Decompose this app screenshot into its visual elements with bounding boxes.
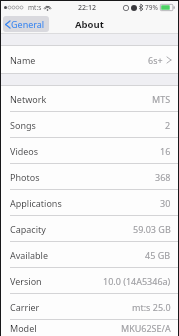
staticText: 2 <box>165 119 171 131</box>
staticText: mt:s <box>28 3 42 12</box>
button[interactable]: Capacity <box>1 216 178 241</box>
staticText: Carrier <box>10 301 40 313</box>
staticText: Available <box>10 249 48 261</box>
button[interactable]: Version <box>1 268 178 293</box>
staticText: Photos <box>10 171 40 183</box>
button[interactable]: Applications <box>1 190 178 215</box>
staticText: Name <box>10 54 36 66</box>
staticText: Videos <box>10 145 39 157</box>
staticText: General <box>11 18 45 30</box>
button[interactable]: Videos <box>1 138 178 163</box>
staticText: About <box>75 18 104 31</box>
staticText: MKU62SE/A <box>121 322 171 334</box>
button[interactable]: Songs <box>1 112 178 137</box>
staticText: mt:s 25.0 <box>132 301 171 313</box>
staticText: Network <box>10 93 47 105</box>
button[interactable]: Network <box>1 86 178 111</box>
staticText: 368 <box>155 171 171 183</box>
staticText: 30 <box>160 197 171 209</box>
staticText: 22:12 <box>78 3 96 13</box>
staticText: 59.03 GB <box>133 223 171 235</box>
button[interactable]: General <box>3 16 49 32</box>
button[interactable]: Carrier <box>1 294 178 319</box>
staticText: 6s+ <box>148 54 163 66</box>
staticText: Songs <box>10 119 36 131</box>
staticText: 79% <box>145 3 158 12</box>
staticText: Capacity <box>10 223 46 235</box>
staticText: 16 <box>160 145 171 157</box>
button[interactable]: Photos <box>1 164 178 189</box>
staticText: Model <box>10 322 37 334</box>
staticText: 10.0 (14A5346a) <box>103 275 171 287</box>
button[interactable]: Name <box>1 46 178 73</box>
staticText: 45 GB <box>145 249 171 261</box>
staticText: MTS <box>152 93 171 105</box>
staticText: Applications <box>10 197 62 209</box>
staticText: Version <box>10 275 42 287</box>
button[interactable]: Available <box>1 242 178 267</box>
button[interactable]: Model <box>1 320 178 336</box>
